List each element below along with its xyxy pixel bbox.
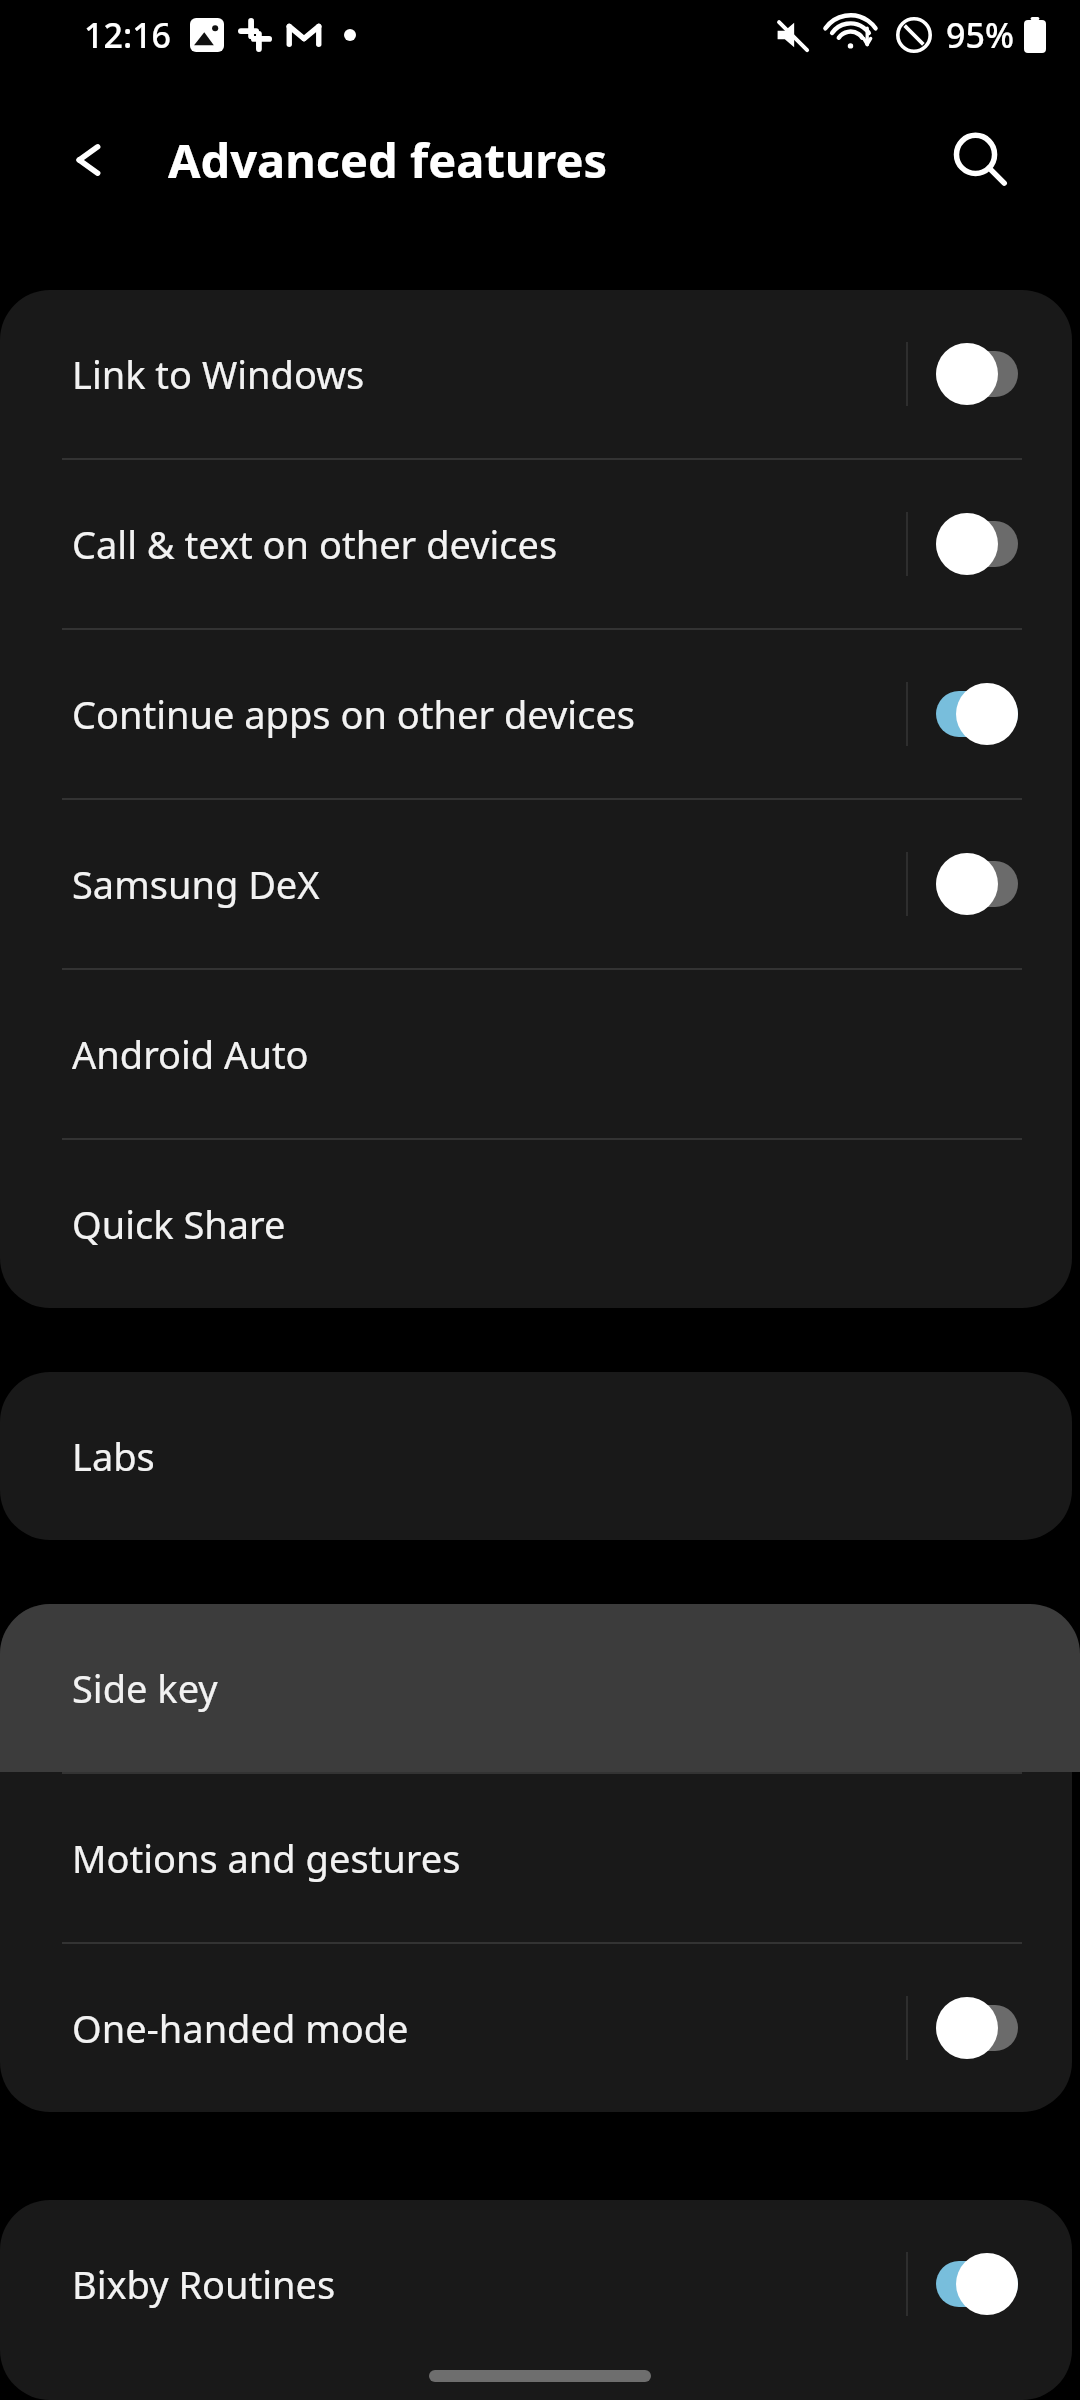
button[interactable]: Android Auto: [0, 970, 1072, 1138]
button[interactable]: Call & text on other devices: [0, 460, 1072, 628]
button[interactable]: Bixby Routines: [0, 2200, 1072, 2368]
staticText: Side key: [72, 1662, 218, 1714]
staticText: One-handed mode: [72, 2002, 409, 2054]
button[interactable]: Link to Windows: [0, 290, 1072, 458]
staticText: 95%: [946, 12, 1014, 58]
staticText: Motions and gestures: [72, 1832, 461, 1884]
button[interactable]: One-handed mode: [0, 1944, 1072, 2112]
staticText: Quick Share: [72, 1198, 286, 1250]
staticText: Labs: [72, 1430, 155, 1482]
staticText: 12:16: [84, 12, 172, 58]
button[interactable]: Search: [932, 112, 1028, 208]
staticText: Bixby Routines: [72, 2258, 336, 2310]
button[interactable]: Link to Windows off: [936, 343, 1018, 405]
staticText: Continue apps on other devices: [72, 688, 636, 740]
button[interactable]: Samsung DeX: [0, 800, 1072, 968]
button[interactable]: Continue apps on other devices on: [936, 683, 1018, 745]
staticText: Link to Windows: [72, 348, 365, 400]
staticText: Call & text on other devices: [72, 518, 558, 570]
button[interactable]: Motions and gestures: [0, 1774, 1072, 1942]
staticText: Samsung DeX: [72, 858, 320, 910]
button[interactable]: Back: [40, 112, 136, 208]
button[interactable]: Call & text on other devices off: [936, 513, 1018, 575]
button[interactable]: Labs: [0, 1372, 1072, 1540]
button[interactable]: Side key: [0, 1604, 1080, 1772]
button[interactable]: Continue apps on other devices: [0, 630, 1072, 798]
button[interactable]: Samsung DeX off: [936, 853, 1018, 915]
button[interactable]: Quick Share: [0, 1140, 1072, 1308]
staticText: Android Auto: [72, 1028, 309, 1080]
staticText: Advanced features: [168, 128, 608, 192]
button[interactable]: Bixby Routines on: [936, 2253, 1018, 2315]
button[interactable]: One-handed mode off: [936, 1997, 1018, 2059]
